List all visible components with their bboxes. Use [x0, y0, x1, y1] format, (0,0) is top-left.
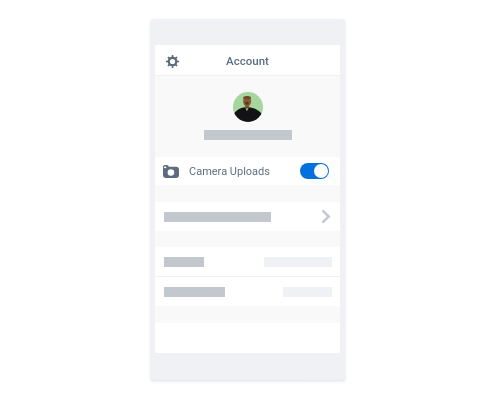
button[interactable]: Camera Uploads toggle — [300, 163, 329, 179]
other: Open — [322, 210, 330, 223]
button[interactable] — [155, 247, 340, 276]
staticText: Camera Uploads — [189, 165, 270, 178]
button[interactable] — [155, 277, 340, 306]
staticText: Account — [226, 54, 269, 67]
button[interactable]: Open — [155, 202, 340, 231]
button[interactable]: Settings — [163, 52, 181, 70]
button[interactable]: Camera Uploads — [155, 157, 340, 185]
